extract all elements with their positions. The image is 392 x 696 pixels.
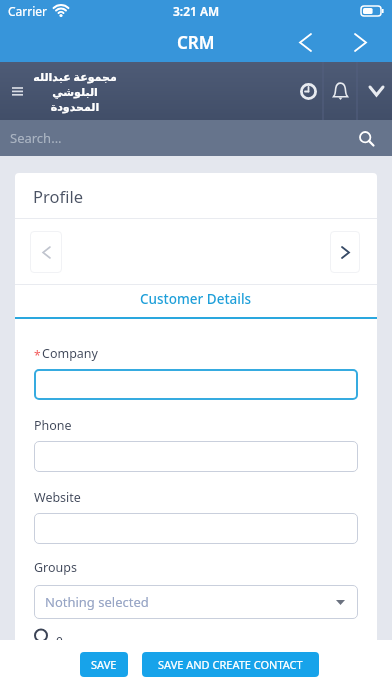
- staticText: SAVE: [91, 657, 117, 672]
- button[interactable]: SAVE AND CREATE CONTACT: [142, 652, 319, 677]
- staticText: Phone: [34, 417, 72, 434]
- button[interactable]: [34, 369, 358, 400]
- staticText: Nothing selected: [45, 593, 149, 611]
- staticText: Profile: [33, 185, 83, 207]
- staticText: Customer Details: [140, 290, 252, 308]
- staticText: Groups: [34, 559, 77, 576]
- staticText: *: [34, 347, 41, 363]
- button[interactable]: [362, 62, 390, 120]
- button[interactable]: [30, 231, 62, 273]
- staticText: CRM: [177, 31, 215, 54]
- staticText: Search...: [10, 129, 62, 147]
- button[interactable]: [296, 62, 321, 120]
- staticText: مجموعة عبدالله البلوشي المحدودة: [27, 69, 123, 114]
- button[interactable]: [34, 513, 358, 544]
- staticText: e: [56, 631, 63, 640]
- button[interactable]: [340, 22, 380, 62]
- button[interactable]: [330, 231, 360, 273]
- button[interactable]: [328, 62, 353, 120]
- button[interactable]: Search...: [0, 120, 392, 156]
- staticText: Carrier: [8, 3, 48, 19]
- button[interactable]: SAVE: [80, 652, 128, 677]
- button[interactable]: Customer Details: [15, 285, 377, 308]
- staticText: Company: [42, 345, 98, 362]
- button[interactable]: [12, 73, 26, 109]
- staticText: Website: [34, 489, 81, 506]
- staticText: SAVE AND CREATE CONTACT: [158, 657, 303, 672]
- button[interactable]: [34, 441, 358, 472]
- button[interactable]: Nothing selected: [34, 585, 358, 619]
- staticText: 3:21 AM: [173, 3, 220, 19]
- button[interactable]: [285, 22, 325, 62]
